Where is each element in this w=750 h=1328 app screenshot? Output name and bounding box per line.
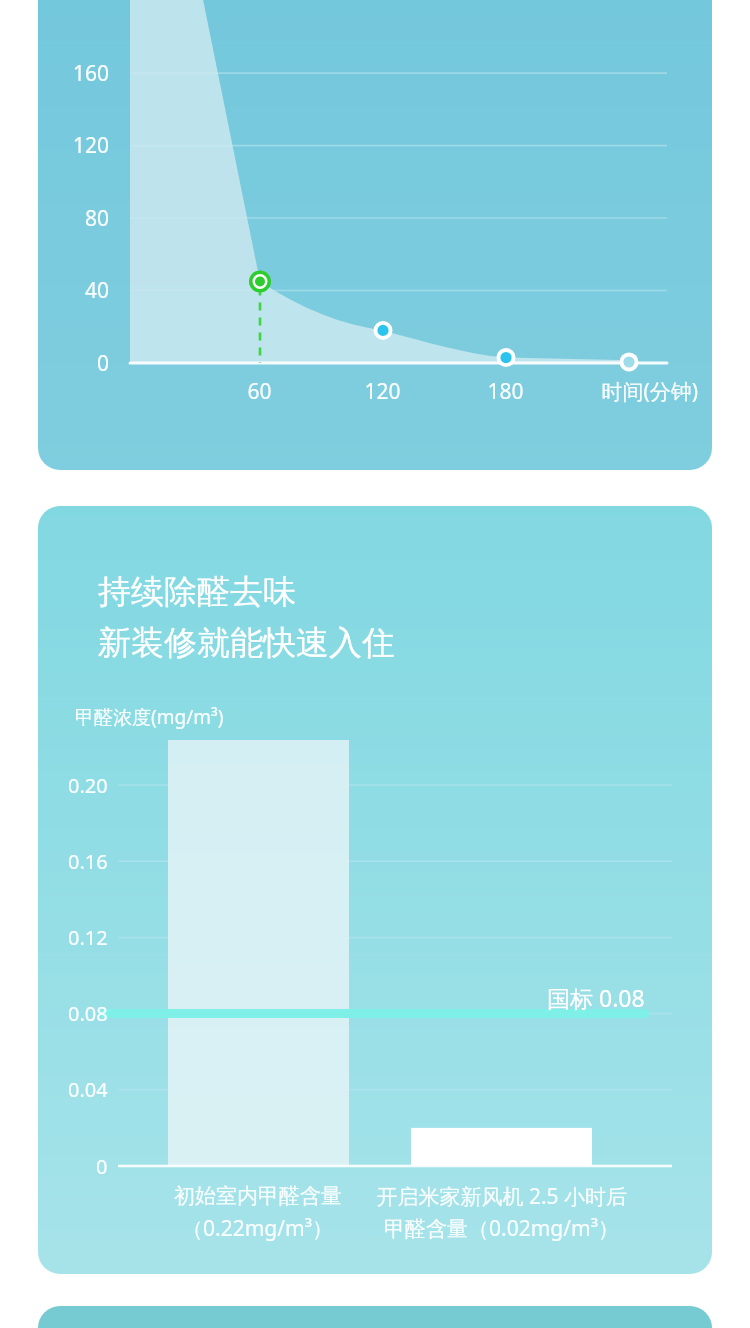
button[interactable]: Mijia fresh air purifier formaldehyde re… [0,0,750,1328]
